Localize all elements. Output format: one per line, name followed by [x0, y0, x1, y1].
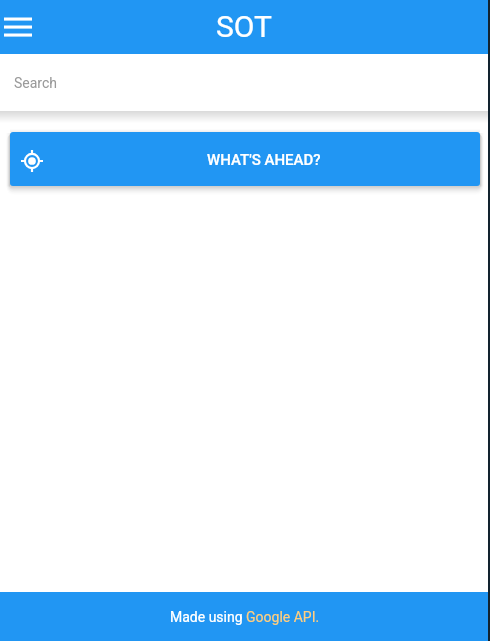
- button[interactable]: WHAT'S AHEAD?: [10, 132, 480, 186]
- staticText: SOT: [216, 9, 272, 44]
- button[interactable]: Made using Google API.: [0, 592, 490, 641]
- button[interactable]: Search: [0, 54, 490, 111]
- staticText: WHAT'S AHEAD?: [207, 151, 321, 169]
- staticText: Made using Google API.: [170, 609, 320, 625]
- button[interactable]: Open navigation menu: [4, 12, 32, 40]
- staticText: Search: [14, 75, 58, 91]
